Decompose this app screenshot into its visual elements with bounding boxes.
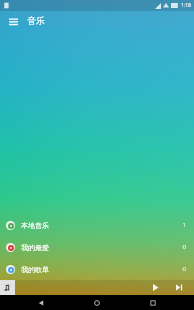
staticText: 0 (182, 265, 186, 273)
button[interactable]: 本地音乐 (0, 214, 194, 236)
staticText: 1 (182, 221, 186, 229)
staticText: 我的最爱 (21, 243, 49, 252)
button[interactable]: Recent apps (138, 295, 168, 310)
button[interactable]: Home (82, 295, 112, 310)
button[interactable]: Next track (169, 280, 189, 295)
button[interactable]: Play (145, 280, 165, 295)
button[interactable]: 我的最爱 (0, 236, 194, 258)
staticText: 音乐 (27, 15, 45, 26)
staticText: 1:18 (181, 2, 191, 9)
button[interactable]: Back (26, 295, 56, 310)
button[interactable]: Now playing (0, 280, 15, 295)
button[interactable]: Open navigation drawer (6, 14, 20, 28)
button[interactable]: 我的歌单 (0, 258, 194, 280)
staticText: 我的歌单 (21, 265, 49, 274)
staticText: 0 (182, 243, 186, 251)
staticText: 本地音乐 (21, 221, 49, 230)
